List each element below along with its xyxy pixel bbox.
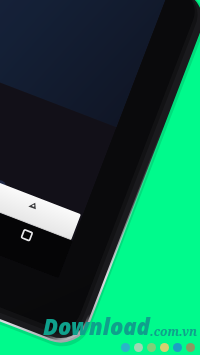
staticText: Download xyxy=(43,311,150,341)
button[interactable]: Colour dot 3 xyxy=(147,343,156,352)
staticText: .com.vn xyxy=(150,323,198,339)
button[interactable]: Colour dot 1 xyxy=(121,343,130,352)
button[interactable]: Colour dot 2 xyxy=(134,343,143,352)
button[interactable]: Colour dot 5 xyxy=(173,343,182,352)
button[interactable]: Colour dot 4 xyxy=(160,343,169,352)
button[interactable]: Download.com.vn xyxy=(43,311,198,341)
button[interactable]: Colour dot 6 xyxy=(186,343,195,352)
